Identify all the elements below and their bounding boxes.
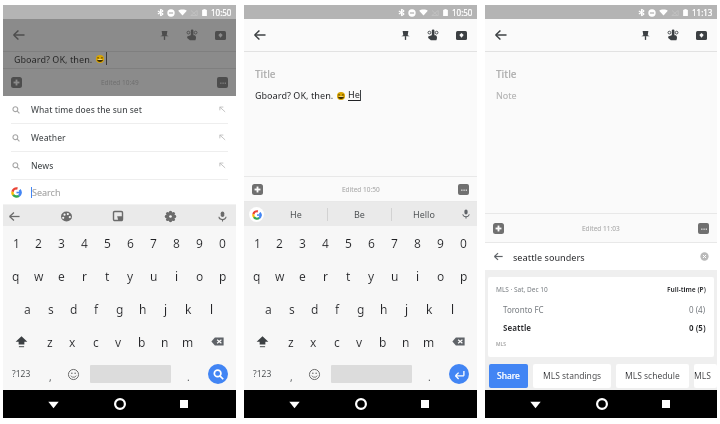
button[interactable]: r [73, 259, 96, 292]
button[interactable]: g [108, 292, 131, 325]
button[interactable]: He [264, 202, 327, 226]
button[interactable]: MLS standings [533, 364, 611, 388]
button[interactable]: seattle sounders [485, 243, 717, 270]
button[interactable]: 9 [188, 226, 211, 259]
button[interactable]: Be [328, 202, 391, 226]
button[interactable]: Add [252, 184, 263, 195]
button[interactable]: j [395, 292, 418, 325]
button[interactable]: Search [3, 180, 236, 204]
button[interactable]: . [176, 358, 200, 390]
button[interactable]: Add [11, 77, 22, 88]
button[interactable]: Share [489, 364, 528, 388]
button[interactable]: Google [249, 207, 264, 222]
button[interactable]: n [394, 325, 417, 358]
button[interactable]: 6 [119, 226, 142, 259]
button[interactable]: Theme [56, 206, 76, 226]
button[interactable]: Back [41, 392, 65, 416]
button[interactable]: 9 [429, 226, 452, 259]
button[interactable]: Shift [3, 325, 39, 358]
button[interactable]: t [337, 259, 360, 292]
button[interactable]: v [107, 325, 130, 358]
button[interactable]: 7 [142, 226, 165, 259]
button[interactable]: 4 [73, 226, 96, 259]
button[interactable]: Backspace [199, 325, 236, 358]
button[interactable]: u [383, 259, 406, 292]
button[interactable]: 5 [337, 226, 360, 259]
button[interactable]: 2 [268, 226, 291, 259]
button[interactable]: l [441, 292, 464, 325]
button[interactable]: Home [349, 392, 373, 416]
button[interactable]: h [131, 292, 154, 325]
button[interactable]: More options [698, 223, 709, 234]
button[interactable]: s [280, 292, 303, 325]
button[interactable]: MLS standings [694, 364, 717, 388]
button[interactable]: d [303, 292, 326, 325]
button[interactable]: z [39, 325, 61, 358]
button[interactable]: Enter [441, 358, 477, 390]
button[interactable]: s [39, 292, 62, 325]
button[interactable]: Back [8, 24, 30, 46]
button[interactable]: , [39, 358, 62, 390]
button[interactable]: q [5, 259, 27, 292]
button[interactable]: 4 [314, 226, 337, 259]
button[interactable]: . [417, 358, 441, 390]
button[interactable]: Sticker [108, 206, 128, 226]
button[interactable]: 7 [383, 226, 406, 259]
button[interactable]: f [326, 292, 349, 325]
button[interactable]: e [50, 259, 73, 292]
button[interactable]: y [360, 259, 383, 292]
button[interactable]: Home [590, 392, 614, 416]
button[interactable]: l [200, 292, 223, 325]
button[interactable]: Archive [691, 25, 711, 45]
button[interactable]: 5 [96, 226, 119, 259]
button[interactable]: m [417, 325, 440, 358]
button[interactable]: c [325, 325, 348, 358]
button[interactable]: 8 [165, 226, 188, 259]
button[interactable]: j [154, 292, 177, 325]
button[interactable]: Reminder [663, 25, 683, 45]
button[interactable]: News [3, 152, 236, 179]
button[interactable]: Weather [3, 124, 236, 151]
button[interactable]: More options [217, 77, 228, 88]
button[interactable]: Voice input [455, 202, 477, 226]
button[interactable]: Emoji [62, 358, 85, 390]
button[interactable]: g [349, 292, 372, 325]
button[interactable]: Voice input [212, 206, 232, 226]
button[interactable]: , [280, 358, 303, 390]
button[interactable]: MLS schedule [616, 364, 689, 388]
button[interactable]: a [16, 292, 39, 325]
button[interactable]: 0 [211, 226, 234, 259]
button[interactable]: v [348, 325, 371, 358]
button[interactable]: f [85, 292, 108, 325]
button[interactable]: Reminder [423, 25, 443, 45]
button[interactable]: o [429, 259, 452, 292]
button[interactable]: Home [108, 392, 132, 416]
button[interactable]: 3 [291, 226, 314, 259]
button[interactable]: t [96, 259, 119, 292]
button[interactable]: x [302, 325, 325, 358]
button[interactable]: Back [249, 24, 271, 46]
button[interactable]: 1 [246, 226, 268, 259]
button[interactable]: Archive [451, 25, 471, 45]
button[interactable]: 6 [360, 226, 383, 259]
button[interactable]: u [142, 259, 165, 292]
button[interactable]: e [291, 259, 314, 292]
button[interactable]: Settings [160, 206, 180, 226]
button[interactable]: b [371, 325, 394, 358]
button[interactable]: Pin [154, 25, 174, 45]
button[interactable]: w [268, 259, 291, 292]
button[interactable]: Recents [413, 392, 437, 416]
button[interactable]: i [165, 259, 188, 292]
button[interactable]: Emoji [303, 358, 326, 390]
button[interactable]: n [153, 325, 176, 358]
button[interactable]: i [406, 259, 429, 292]
button[interactable]: p [452, 259, 475, 292]
button[interactable]: Hello [392, 202, 455, 226]
button[interactable]: h [372, 292, 395, 325]
button[interactable]: x [61, 325, 84, 358]
button[interactable]: 3 [50, 226, 73, 259]
button[interactable]: Back [523, 392, 547, 416]
button[interactable]: p [211, 259, 234, 292]
button[interactable]: a [257, 292, 280, 325]
